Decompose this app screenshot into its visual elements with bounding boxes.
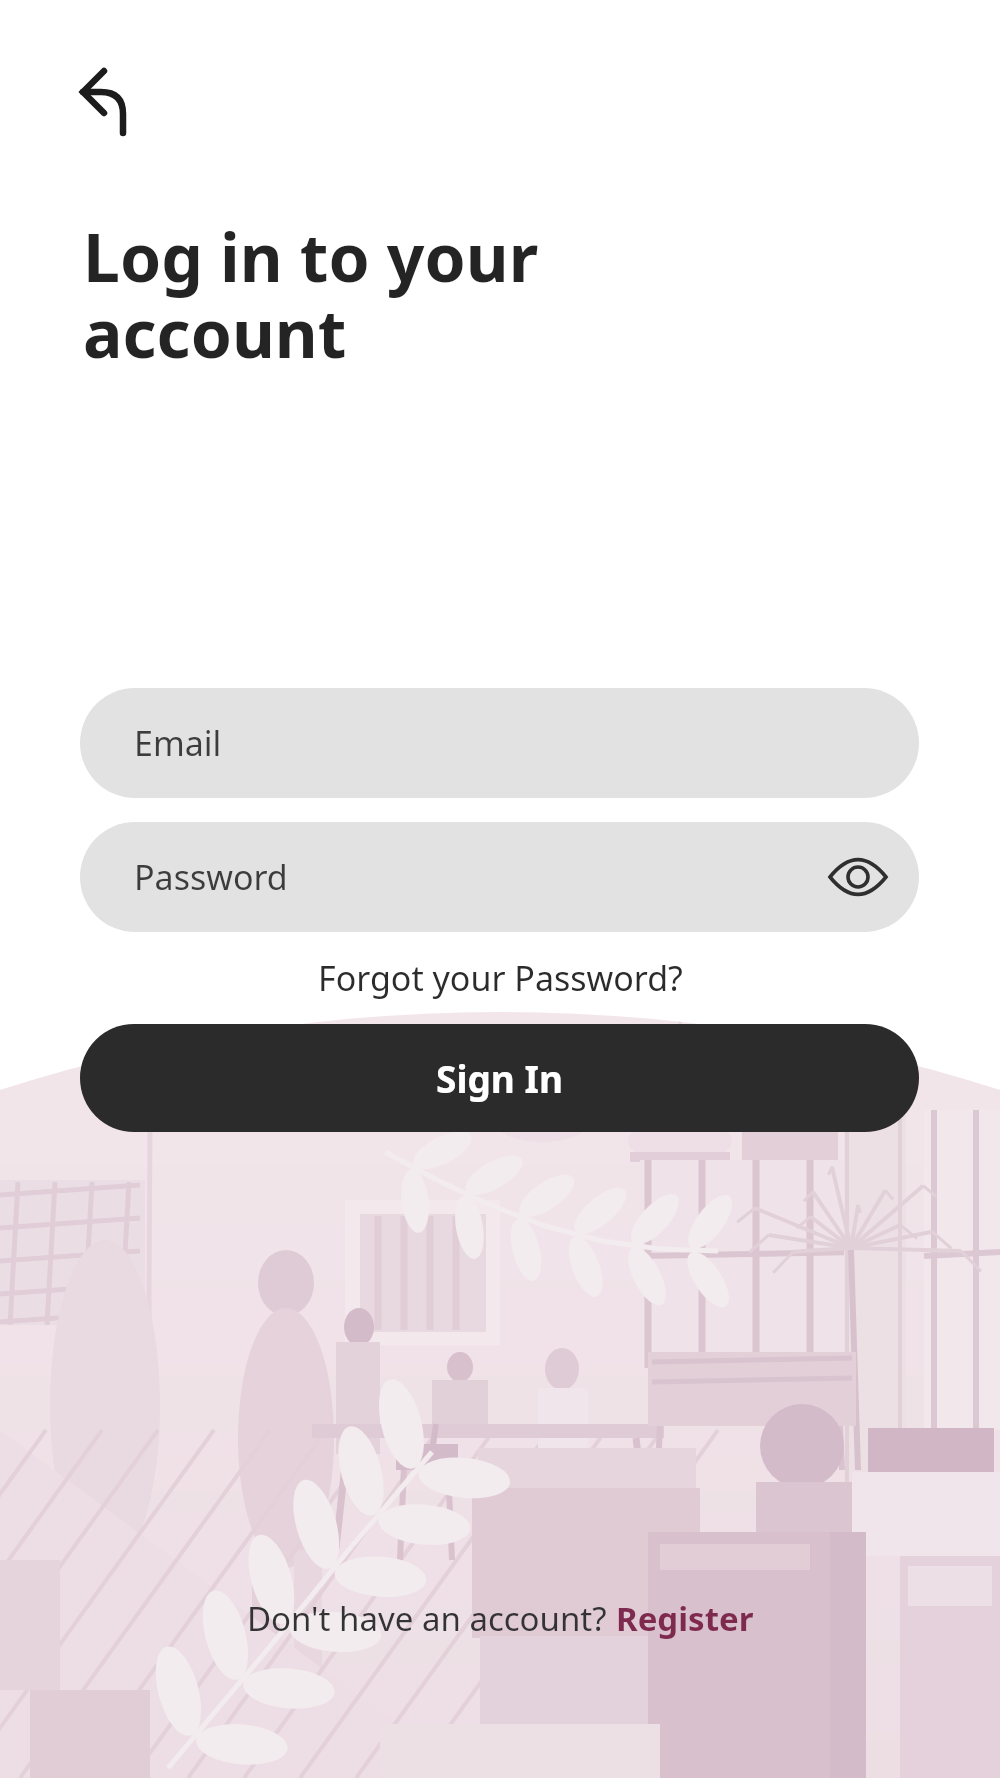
- button[interactable]: [70, 60, 140, 145]
- button[interactable]: Don't have an account?: [0, 1596, 1000, 1641]
- staticText: Register: [616, 1596, 754, 1641]
- staticText: Email: [134, 720, 222, 766]
- button[interactable]: Password: [80, 822, 919, 932]
- button[interactable]: Email: [80, 688, 919, 798]
- button[interactable]: Forgot your Password?: [318, 955, 683, 1001]
- staticText: Password: [134, 854, 288, 900]
- staticText: Sign In: [436, 1053, 563, 1103]
- staticText: Log in to your account: [83, 211, 539, 377]
- staticText: Don't have an account?: [247, 1596, 616, 1641]
- button[interactable]: Sign In: [80, 1024, 919, 1132]
